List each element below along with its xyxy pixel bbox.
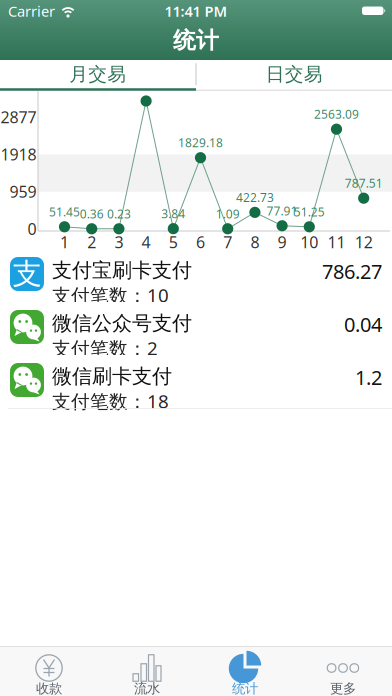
staticText: 51.45 bbox=[49, 204, 80, 220]
button[interactable]: 日交易 bbox=[196, 60, 392, 88]
staticText: 77.91 bbox=[267, 203, 298, 219]
staticText: 支 bbox=[12, 256, 41, 292]
staticText: 1.2 bbox=[355, 364, 382, 391]
button[interactable]: 流水 bbox=[98, 647, 196, 696]
staticText: 3 bbox=[114, 231, 123, 253]
staticText: 微信刷卡支付 bbox=[52, 364, 172, 389]
staticText: 11:41 PM bbox=[164, 1, 227, 21]
staticText: 1918 bbox=[0, 144, 36, 165]
staticText: 0.36 bbox=[80, 206, 104, 222]
staticText: 支付笔数：10 bbox=[52, 283, 169, 307]
staticText: 787.51 bbox=[345, 175, 383, 191]
button[interactable]: 支 bbox=[0, 249, 392, 302]
staticText: 9 bbox=[278, 231, 287, 253]
staticText: 2563.09 bbox=[314, 106, 359, 122]
staticText: 786.27 bbox=[322, 258, 382, 285]
staticText: 支付宝刷卡支付 bbox=[52, 258, 192, 283]
staticText: 6 bbox=[196, 231, 205, 253]
staticText: 更多 bbox=[330, 680, 356, 696]
staticText: 3.84 bbox=[161, 206, 185, 222]
staticText: 支付笔数：18 bbox=[52, 389, 169, 413]
staticText: 7 bbox=[223, 231, 232, 253]
staticText: 统计 bbox=[232, 680, 258, 696]
staticText: 0 bbox=[27, 218, 36, 239]
staticText: 10 bbox=[300, 231, 318, 253]
staticText: 51.25 bbox=[294, 204, 325, 220]
staticText: 日交易 bbox=[266, 63, 323, 86]
staticText: 422.73 bbox=[236, 189, 274, 205]
staticText: 收款 bbox=[36, 680, 62, 696]
staticText: 支付笔数：2 bbox=[52, 336, 158, 360]
staticText: 1.09 bbox=[216, 206, 240, 222]
staticText: 2 bbox=[87, 231, 96, 253]
staticText: 2877 bbox=[0, 106, 36, 128]
staticText: 1 bbox=[60, 231, 69, 253]
button[interactable]: 统计 bbox=[196, 647, 294, 696]
button[interactable]: 微信公众号支付 bbox=[0, 302, 392, 355]
staticText: 1829.18 bbox=[178, 135, 223, 151]
staticText: 0.04 bbox=[344, 311, 382, 338]
button[interactable]: 收款 bbox=[0, 647, 98, 696]
staticText: 959 bbox=[9, 181, 36, 202]
staticText: 11 bbox=[327, 231, 345, 253]
staticText: 5 bbox=[169, 231, 178, 253]
staticText: 4 bbox=[142, 231, 151, 253]
button[interactable]: 月交易 bbox=[0, 60, 195, 88]
staticText: 微信公众号支付 bbox=[52, 311, 192, 336]
staticText: 0.23 bbox=[107, 206, 131, 222]
button[interactable]: 更多 bbox=[294, 647, 392, 696]
button[interactable]: 微信刷卡支付 bbox=[0, 355, 392, 408]
staticText: 12 bbox=[355, 231, 373, 253]
staticText: 统计 bbox=[173, 27, 219, 54]
staticText: 8 bbox=[250, 231, 259, 253]
staticText: Carrier bbox=[8, 1, 55, 21]
staticText: 月交易 bbox=[69, 63, 126, 86]
staticText: 流水 bbox=[134, 680, 160, 696]
